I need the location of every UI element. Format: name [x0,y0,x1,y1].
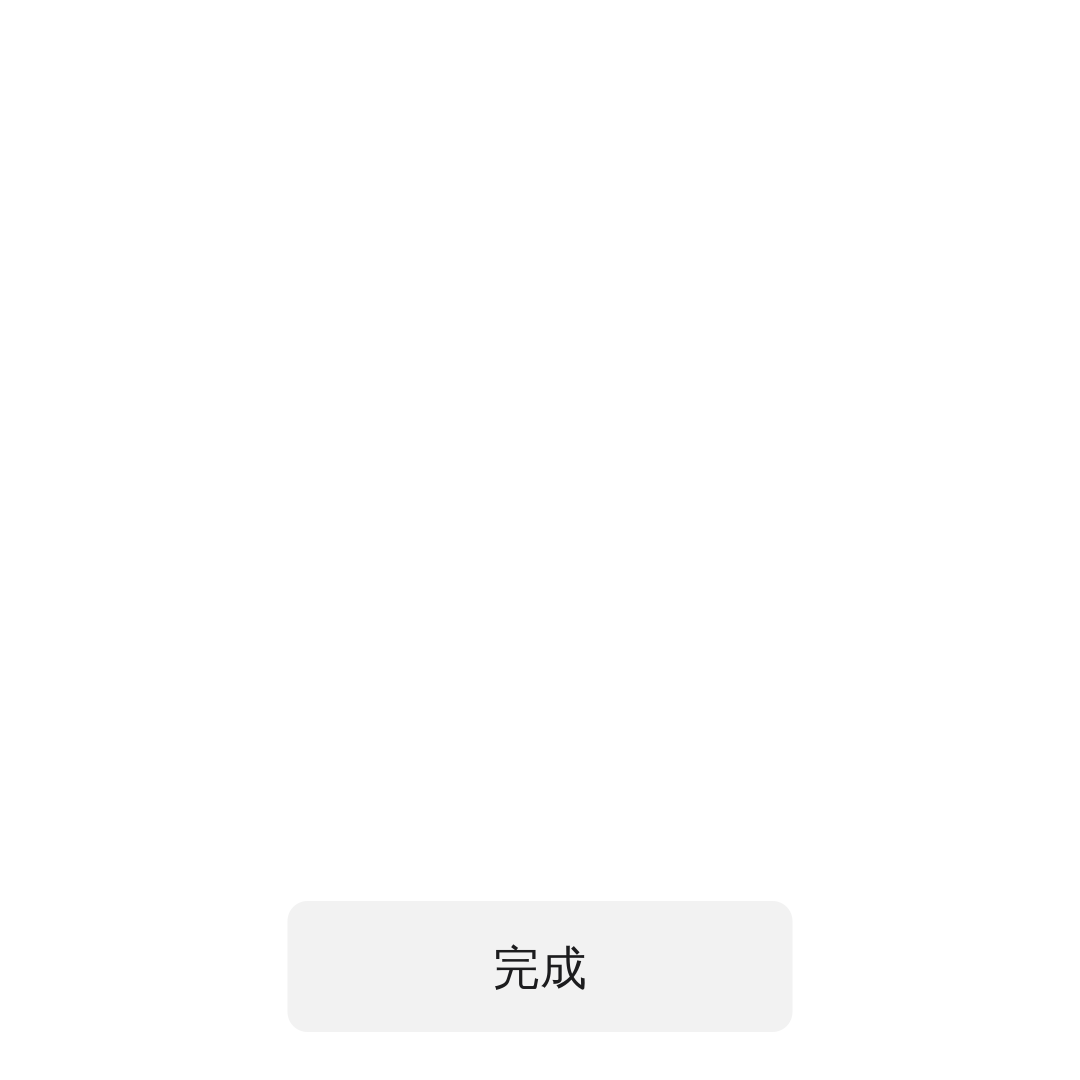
button[interactable]: 完成 [287,901,792,1032]
staticText: 完成 [493,940,587,997]
